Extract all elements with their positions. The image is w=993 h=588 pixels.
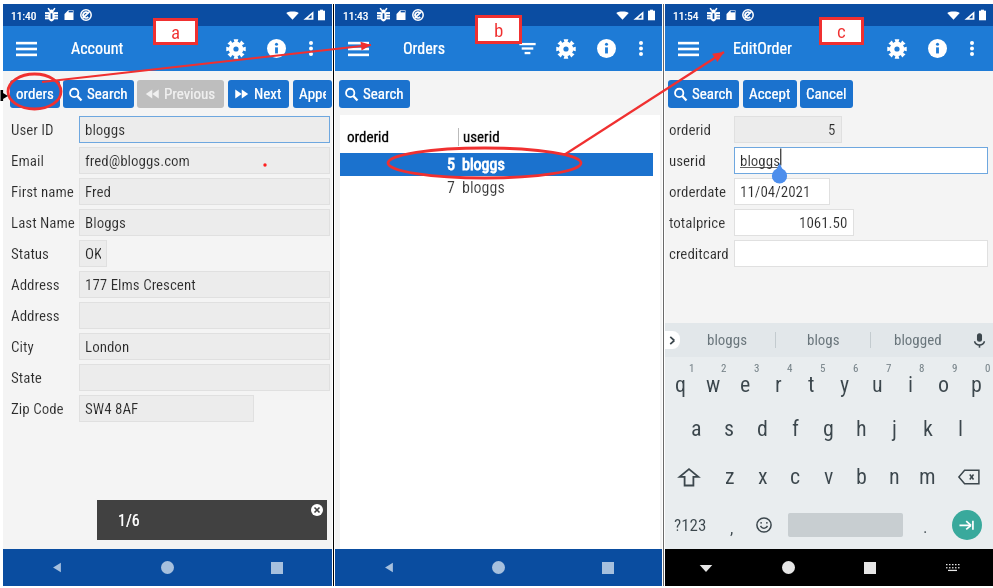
button[interactable]: Keyboard xyxy=(911,549,993,586)
button[interactable]: Back xyxy=(665,549,747,586)
button[interactable]: Shift xyxy=(665,453,713,501)
button[interactable]: Menu xyxy=(3,26,49,71)
button[interactable]: blogged xyxy=(871,323,965,357)
staticText: i xyxy=(908,372,914,398)
button[interactable]: Settings xyxy=(546,26,586,71)
button[interactable]: totalprice xyxy=(665,207,993,238)
button[interactable]: Address xyxy=(3,269,332,300)
button[interactable]: l xyxy=(944,405,977,453)
button[interactable]: c xyxy=(779,453,812,501)
button[interactable]: n xyxy=(878,453,911,501)
button[interactable]: More options xyxy=(957,26,987,71)
button[interactable]: 4 xyxy=(762,357,795,405)
button[interactable]: Recents xyxy=(222,549,332,586)
button[interactable]: 5 xyxy=(340,153,653,176)
button[interactable]: 5 xyxy=(795,357,828,405)
button[interactable]: j xyxy=(878,405,911,453)
button[interactable]: City xyxy=(3,331,332,362)
button[interactable]: Status xyxy=(3,238,332,269)
button[interactable]: Menu xyxy=(335,26,381,71)
button[interactable]: State xyxy=(3,362,332,393)
button[interactable]: Address xyxy=(3,300,332,331)
button[interactable]: More options xyxy=(296,26,326,71)
button[interactable]: User ID xyxy=(3,114,332,145)
button[interactable]: z xyxy=(713,453,746,501)
button[interactable]: Info xyxy=(586,26,626,71)
button[interactable]: g xyxy=(812,405,845,453)
button[interactable]: blogs xyxy=(776,323,870,357)
staticText: ?123 xyxy=(674,515,707,535)
button[interactable]: Backspace xyxy=(944,453,993,501)
button[interactable]: orders xyxy=(10,80,60,108)
button[interactable]: Zip Code xyxy=(3,393,332,424)
button[interactable]: bloggs xyxy=(680,323,775,357)
button[interactable]: 3 xyxy=(729,357,762,405)
button[interactable]: Info xyxy=(917,26,957,71)
button[interactable]: 9 xyxy=(927,357,960,405)
button[interactable]: a xyxy=(680,405,713,453)
button[interactable]: Settings xyxy=(877,26,917,71)
button[interactable]: First name xyxy=(3,176,332,207)
button[interactable]: Home xyxy=(747,549,829,586)
button[interactable]: f xyxy=(779,405,812,453)
button[interactable]: Back xyxy=(335,549,444,586)
button[interactable]: Email xyxy=(3,145,332,176)
button[interactable]: orderdate xyxy=(665,176,993,207)
button[interactable]: b xyxy=(845,453,878,501)
button[interactable]: 7 xyxy=(861,357,894,405)
button[interactable]: Search xyxy=(668,80,739,108)
button[interactable]: 1 xyxy=(665,357,697,405)
button[interactable]: Enter xyxy=(940,501,993,549)
button[interactable]: k xyxy=(911,405,944,453)
button[interactable]: h xyxy=(845,405,878,453)
button[interactable]: Emoji xyxy=(748,501,779,549)
staticText: 11/04/2021 xyxy=(740,183,811,201)
staticText: o xyxy=(938,372,950,398)
button[interactable]: userid xyxy=(665,145,993,176)
button[interactable]: Cancel xyxy=(800,80,853,108)
button[interactable]: Append xyxy=(293,80,332,108)
button[interactable]: Next xyxy=(228,80,289,108)
button[interactable]: Home xyxy=(444,549,553,586)
button[interactable]: v xyxy=(812,453,845,501)
button[interactable]: , xyxy=(716,501,748,549)
button[interactable]: s xyxy=(713,405,746,453)
staticText: 1 xyxy=(689,362,695,375)
button[interactable]: 6 xyxy=(828,357,861,405)
staticText: 0 xyxy=(985,362,991,375)
button[interactable]: Recents xyxy=(829,549,911,586)
button[interactable]: x xyxy=(746,453,779,501)
button[interactable]: Recents xyxy=(553,549,662,586)
button[interactable]: 8 xyxy=(894,357,927,405)
button[interactable]: Dismiss xyxy=(311,504,323,516)
button[interactable]: 0 xyxy=(960,357,993,405)
button[interactable]: d xyxy=(746,405,779,453)
button[interactable]: Expand suggestions xyxy=(665,331,680,349)
button[interactable]: Home xyxy=(112,549,222,586)
button[interactable]: Settings xyxy=(216,26,256,71)
button[interactable]: creditcard xyxy=(665,238,993,269)
staticText: 3 xyxy=(754,362,760,375)
staticText: 177 Elms Crescent xyxy=(85,276,196,294)
button[interactable]: Search xyxy=(339,80,410,108)
staticText: userid xyxy=(669,152,734,170)
staticText: Address xyxy=(11,276,79,294)
button[interactable]: Accept xyxy=(743,80,797,108)
button[interactable]: m xyxy=(911,453,944,501)
button[interactable]: Space xyxy=(779,501,911,549)
button[interactable]: . xyxy=(911,501,940,549)
button[interactable]: Filter xyxy=(509,26,546,71)
button[interactable]: ?123 xyxy=(665,501,716,549)
button[interactable]: 7 xyxy=(340,176,660,199)
button[interactable]: Previous xyxy=(137,80,224,108)
button[interactable]: Info xyxy=(256,26,296,71)
staticText: orders xyxy=(16,85,54,103)
button[interactable]: orderid xyxy=(665,114,993,145)
button[interactable]: Search xyxy=(63,80,134,108)
button[interactable]: Voice input xyxy=(965,323,993,357)
button[interactable]: 2 xyxy=(697,357,729,405)
button[interactable]: Menu xyxy=(665,26,711,71)
button[interactable]: Last Name xyxy=(3,207,332,238)
button[interactable]: More options xyxy=(626,26,656,71)
button[interactable]: Back xyxy=(3,549,112,586)
